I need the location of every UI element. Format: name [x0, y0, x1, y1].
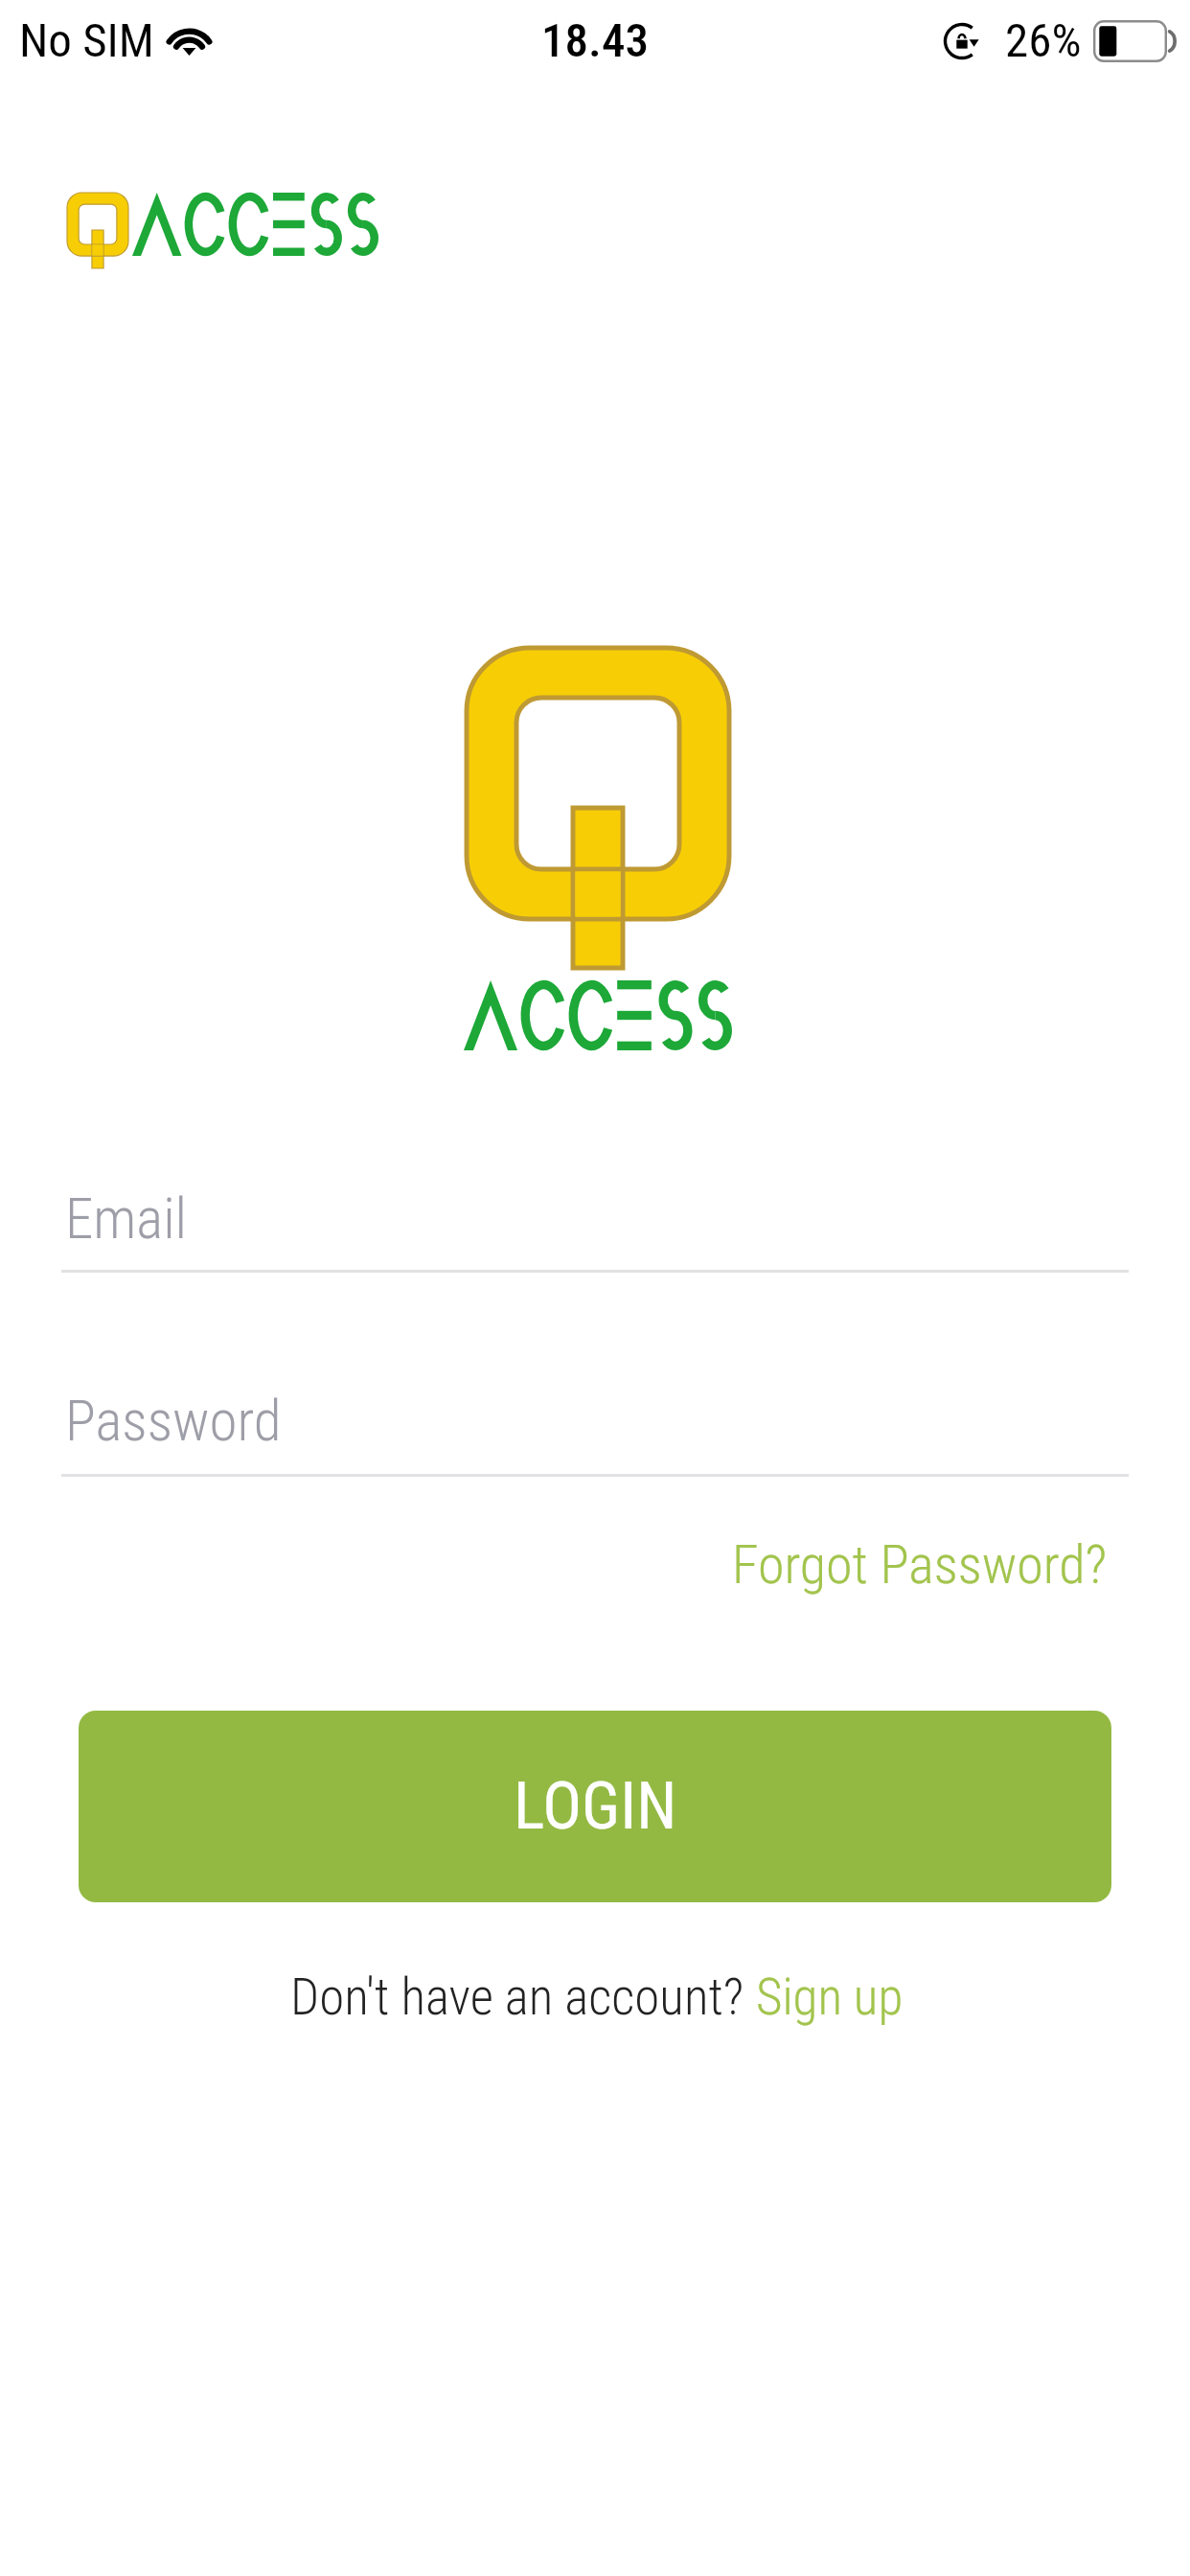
staticText: Forgot Password? — [732, 1533, 1108, 1597]
staticText: Password — [65, 1388, 282, 1454]
staticText: Email — [65, 1185, 188, 1252]
button[interactable]: Forgot Password? — [722, 1524, 1117, 1606]
button[interactable]: Sign up — [756, 1958, 904, 2036]
staticText: Sign up — [756, 1967, 904, 2027]
button[interactable]: LOGIN — [79, 1711, 1111, 1902]
staticText: Don't have an account? — [290, 1967, 756, 2027]
staticText: 18.43 — [0, 13, 1190, 68]
staticText: No SIM — [19, 13, 154, 68]
staticText: 26% — [1005, 13, 1082, 68]
staticText: LOGIN — [514, 1768, 677, 1845]
